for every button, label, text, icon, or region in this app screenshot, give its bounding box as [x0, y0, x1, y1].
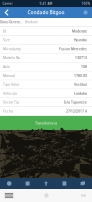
button[interactable]: Back	[0, 178, 18, 189]
staticText: Tipo Valor	[3, 82, 19, 87]
staticText: 100%	[81, 1, 89, 5]
button[interactable]: Preview	[2, 191, 16, 200]
staticText: Modelo No	[3, 56, 20, 60]
staticText: 108	[81, 65, 87, 69]
button[interactable]: Switcher	[77, 191, 90, 200]
button[interactable]: Transferencia	[0, 116, 92, 130]
button[interactable]: Brochure	[22, 18, 40, 26]
staticText: Hyundai	[74, 38, 87, 42]
button[interactable]: Datos Generales	[0, 18, 22, 26]
staticText: Id	[3, 29, 6, 33]
staticText: Carrier	[2, 1, 12, 5]
staticText: Manual	[3, 73, 15, 78]
staticText: 130713	[75, 56, 87, 60]
staticText: Brochure	[25, 20, 38, 24]
staticText: Vehiculo	[3, 91, 17, 96]
staticText: Cordoba	[74, 91, 87, 96]
staticText: 9:41 AM	[39, 1, 52, 5]
staticText: Microdurity	[3, 47, 21, 51]
staticText: 1780.00	[74, 73, 87, 78]
staticText: Vestibul	[74, 82, 87, 87]
staticText: Fusion Mercedes	[59, 47, 87, 51]
staticText: Transferencia	[35, 120, 57, 126]
button[interactable]: Forward	[18, 178, 37, 189]
staticText: Sector Tip	[3, 100, 19, 105]
staticText: Isla Taponese	[64, 100, 87, 105]
staticText: Size	[3, 38, 10, 42]
staticText: Moderate	[72, 29, 87, 33]
button[interactable]: Back	[0, 7, 13, 18]
staticText: Datos Generales	[0, 20, 22, 24]
button[interactable]: Options	[79, 7, 92, 18]
staticText: Fecha	[3, 109, 13, 113]
staticText: Axle	[3, 65, 10, 69]
staticText: Condado Bitgoo	[27, 9, 64, 16]
staticText: 27/12/2017 4	[66, 109, 87, 113]
button[interactable]: Home	[40, 191, 53, 200]
button[interactable]: Share	[37, 178, 55, 189]
button[interactable]: Bookmarks	[55, 178, 74, 189]
button[interactable]: Tabs	[74, 178, 92, 189]
